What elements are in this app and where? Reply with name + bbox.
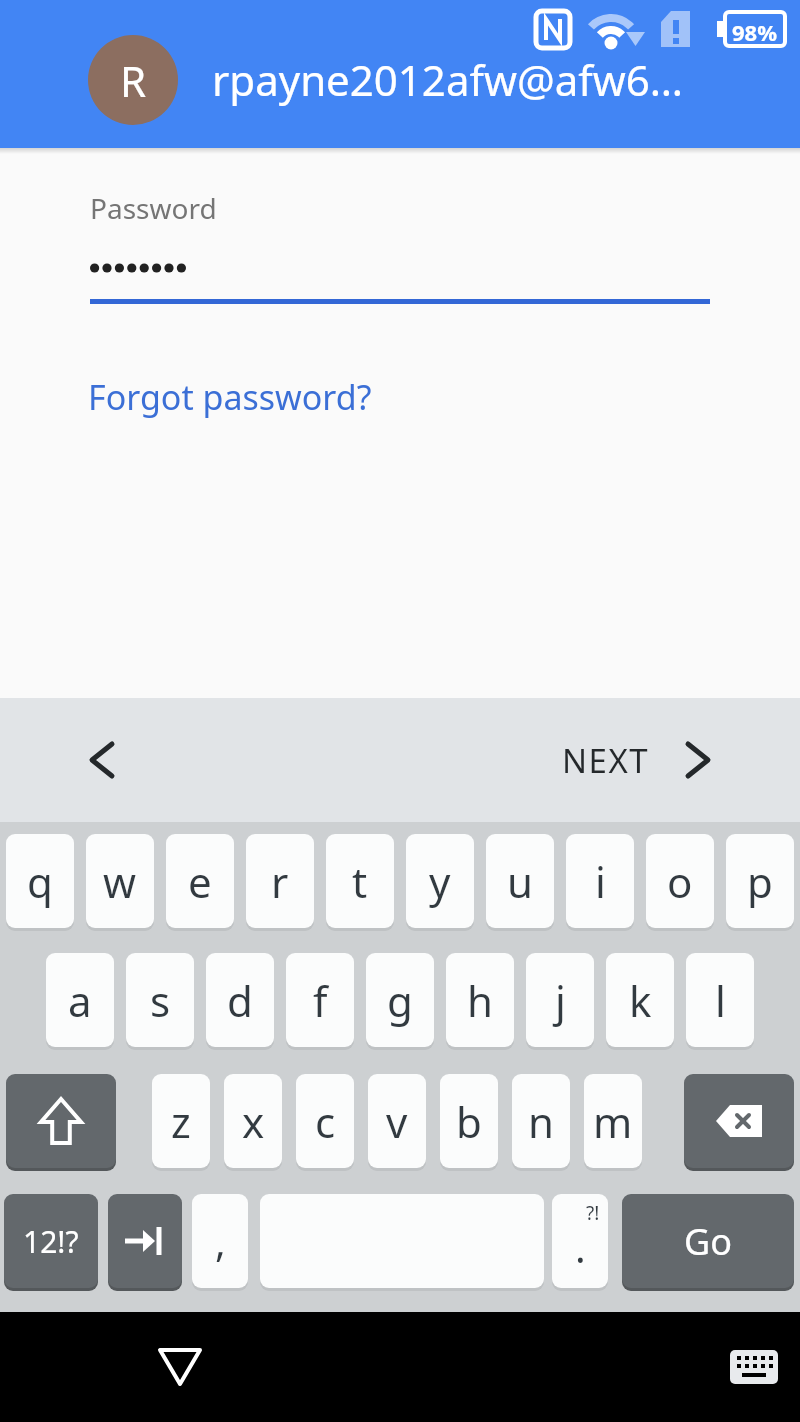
- button[interactable]: t: [326, 834, 394, 928]
- staticText: Go: [684, 1217, 732, 1266]
- staticText: ,: [215, 1214, 226, 1268]
- button[interactable]: [77, 736, 125, 784]
- button[interactable]: ,: [192, 1194, 248, 1288]
- button[interactable]: [150, 1337, 210, 1397]
- button[interactable]: f: [286, 953, 354, 1047]
- staticText: x: [242, 1093, 265, 1150]
- button[interactable]: [684, 1074, 794, 1168]
- staticText: o: [667, 853, 693, 910]
- staticText: y: [429, 853, 451, 910]
- button[interactable]: o: [646, 834, 714, 928]
- button[interactable]: k: [606, 953, 674, 1047]
- staticText: k: [629, 972, 652, 1029]
- staticText: m: [593, 1093, 633, 1150]
- button[interactable]: c: [296, 1074, 354, 1168]
- staticText: Forgot password?: [88, 374, 372, 420]
- button[interactable]: ?!: [552, 1194, 608, 1288]
- button[interactable]: e: [166, 834, 234, 928]
- staticText: R: [120, 52, 147, 109]
- staticText: l: [715, 972, 726, 1029]
- staticText: q: [27, 853, 53, 910]
- staticText: b: [456, 1093, 482, 1150]
- button[interactable]: p: [726, 834, 794, 928]
- staticText: p: [747, 853, 773, 910]
- button[interactable]: m: [584, 1074, 642, 1168]
- button[interactable]: g: [366, 953, 434, 1047]
- staticText: d: [227, 972, 253, 1029]
- button[interactable]: n: [512, 1074, 570, 1168]
- button[interactable]: Go: [622, 1194, 794, 1288]
- staticText: r: [271, 853, 289, 910]
- button[interactable]: b: [440, 1074, 498, 1168]
- staticText: h: [467, 972, 493, 1029]
- staticText: i: [595, 853, 606, 910]
- button[interactable]: y: [406, 834, 474, 928]
- button[interactable]: [108, 1194, 182, 1288]
- staticText: u: [507, 853, 533, 910]
- button[interactable]: [6, 1074, 116, 1168]
- staticText: .: [575, 1220, 586, 1274]
- staticText: v: [386, 1093, 408, 1150]
- button[interactable]: 12!?: [4, 1194, 98, 1288]
- button[interactable]: q: [6, 834, 74, 928]
- button[interactable]: u: [486, 834, 554, 928]
- staticText: g: [387, 972, 413, 1029]
- button[interactable]: w: [86, 834, 154, 928]
- button[interactable]: v: [368, 1074, 426, 1168]
- staticText: ?!: [586, 1200, 600, 1226]
- button[interactable]: Forgot password?: [80, 366, 380, 428]
- button[interactable]: d: [206, 953, 274, 1047]
- staticText: c: [315, 1093, 336, 1150]
- staticText: 12!?: [23, 1221, 79, 1262]
- button[interactable]: s: [126, 953, 194, 1047]
- button[interactable]: h: [446, 953, 514, 1047]
- staticText: 98%: [732, 17, 778, 47]
- button[interactable]: a: [46, 953, 114, 1047]
- staticText: NEXT: [562, 738, 650, 783]
- staticText: rpayne2012afw@afw6…: [212, 51, 683, 108]
- staticText: Password: [90, 189, 217, 227]
- staticText: e: [188, 853, 212, 910]
- staticText: n: [528, 1093, 554, 1150]
- button[interactable]: j: [526, 953, 594, 1047]
- staticText: w: [103, 853, 137, 910]
- button[interactable]: r: [246, 834, 314, 928]
- staticText: z: [171, 1093, 191, 1150]
- button[interactable]: NEXT: [562, 698, 722, 822]
- button[interactable]: z: [152, 1074, 210, 1168]
- button[interactable]: x: [224, 1074, 282, 1168]
- button[interactable]: i: [566, 834, 634, 928]
- staticText: f: [313, 972, 328, 1029]
- button[interactable]: [722, 1337, 786, 1397]
- staticText: t: [352, 853, 368, 910]
- staticText: a: [68, 972, 92, 1029]
- button[interactable]: l: [686, 953, 754, 1047]
- staticText: j: [555, 972, 566, 1029]
- staticText: s: [150, 972, 171, 1029]
